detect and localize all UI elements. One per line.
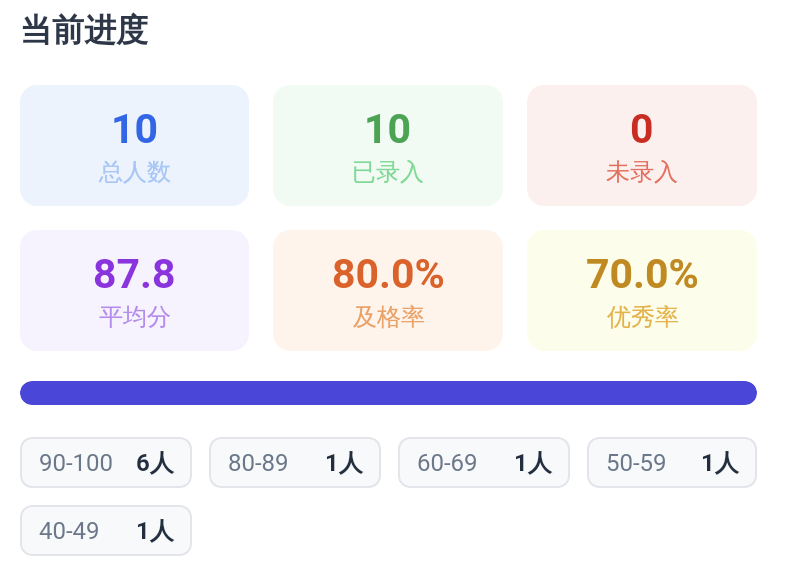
staticText: 未录入 <box>606 157 678 187</box>
staticText: 60-69 <box>417 449 478 477</box>
button[interactable]: 60-69 <box>398 437 570 488</box>
staticText: 40-49 <box>39 517 100 545</box>
staticText: 10 <box>364 105 412 153</box>
staticText: 1人 <box>701 448 739 478</box>
staticText: 10 <box>111 105 159 153</box>
staticText: 0 <box>630 105 654 153</box>
staticText: 90-100 <box>39 449 114 477</box>
staticText: 87.8 <box>93 250 176 298</box>
staticText: 总人数 <box>99 157 171 187</box>
button[interactable]: 0 <box>527 85 757 206</box>
staticText: 1人 <box>514 448 552 478</box>
staticText: 平均分 <box>99 302 171 332</box>
button[interactable]: 80.0% <box>273 230 503 351</box>
staticText: 80-89 <box>228 449 289 477</box>
button[interactable]: 80-89 <box>209 437 381 488</box>
staticText: 80.0% <box>332 250 445 298</box>
button[interactable]: 10 <box>273 85 503 206</box>
staticText: 6人 <box>136 448 174 478</box>
staticText: 70.0% <box>586 250 699 298</box>
staticText: 及格率 <box>353 302 425 332</box>
button[interactable]: 50-59 <box>587 437 757 488</box>
staticText: 1人 <box>136 516 174 546</box>
button[interactable]: 40-49 <box>20 505 192 556</box>
button[interactable]: 10 <box>20 85 249 206</box>
button[interactable]: 70.0% <box>527 230 757 351</box>
staticText: 1人 <box>325 448 363 478</box>
staticText: 50-59 <box>606 449 667 477</box>
staticText: 已录入 <box>352 157 424 187</box>
button[interactable]: 87.8 <box>20 230 249 351</box>
button[interactable]: 90-100 <box>20 437 192 488</box>
staticText: 当前进度 <box>20 10 148 50</box>
staticText: 优秀率 <box>607 302 679 332</box>
